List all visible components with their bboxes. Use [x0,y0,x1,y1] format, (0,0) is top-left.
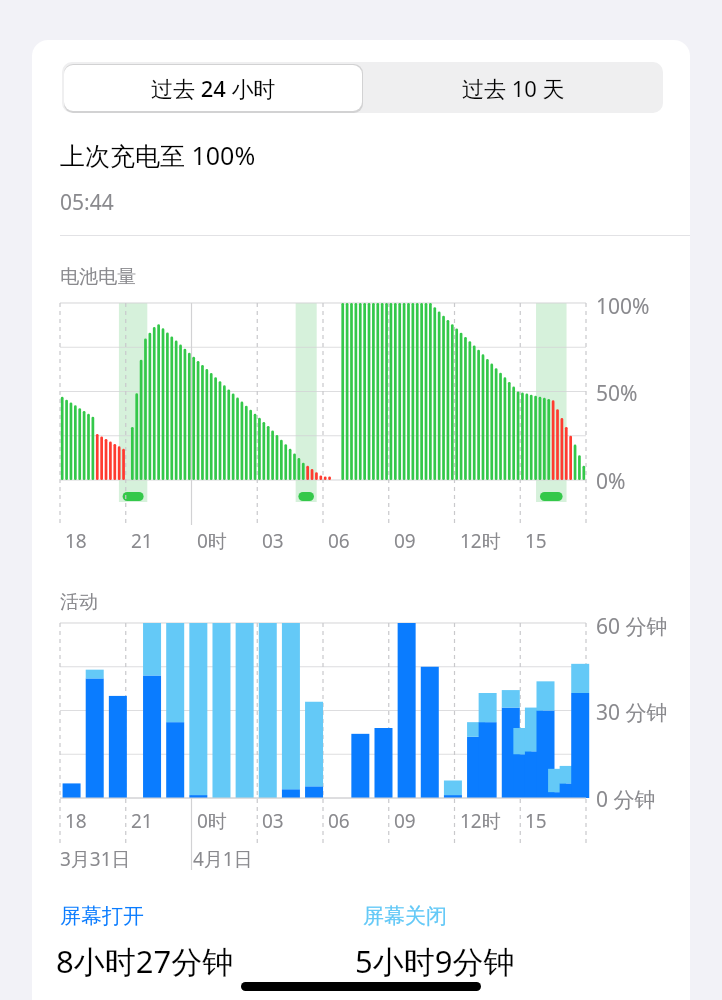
staticText: 100% [596,292,650,321]
staticText: 12时 [460,528,501,554]
staticText: 30 分钟 [596,698,668,727]
staticText: 05:44 [60,188,114,217]
staticText: 50% [596,379,638,408]
staticText: 60 分钟 [596,612,668,641]
staticText: 上次充电至 100% [60,138,256,172]
button[interactable]: 过去 10 天 [363,62,663,113]
staticText: 4月1日 [193,846,253,872]
staticText: 03 [262,808,284,834]
staticText: 12时 [460,808,501,834]
staticText: 21 [131,808,153,834]
staticText: 屏幕关闭 [363,903,447,929]
staticText: 15 [525,808,547,834]
staticText: 09 [394,528,416,554]
staticText: 0时 [197,528,227,554]
staticText: 18 [65,808,87,834]
staticText: 15 [525,528,547,554]
staticText: 活动 [60,590,98,614]
staticText: 3月31日 [60,846,131,872]
staticText: 过去 24 小时 [151,73,276,103]
staticText: 0% [596,467,626,496]
staticText: 21 [131,528,153,554]
staticText: 09 [394,808,416,834]
staticText: 06 [328,528,350,554]
staticText: 8小时27分钟 [56,940,234,982]
staticText: 5小时9分钟 [355,940,515,982]
button[interactable]: 过去 24 小时 [62,62,363,113]
staticText: 03 [262,528,284,554]
staticText: 电池电量 [60,265,136,289]
staticText: 屏幕打开 [60,903,144,929]
staticText: 06 [328,808,350,834]
staticText: 过去 10 天 [462,73,565,103]
staticText: 0 分钟 [596,785,656,814]
staticText: 18 [65,528,87,554]
staticText: 0时 [197,808,227,834]
